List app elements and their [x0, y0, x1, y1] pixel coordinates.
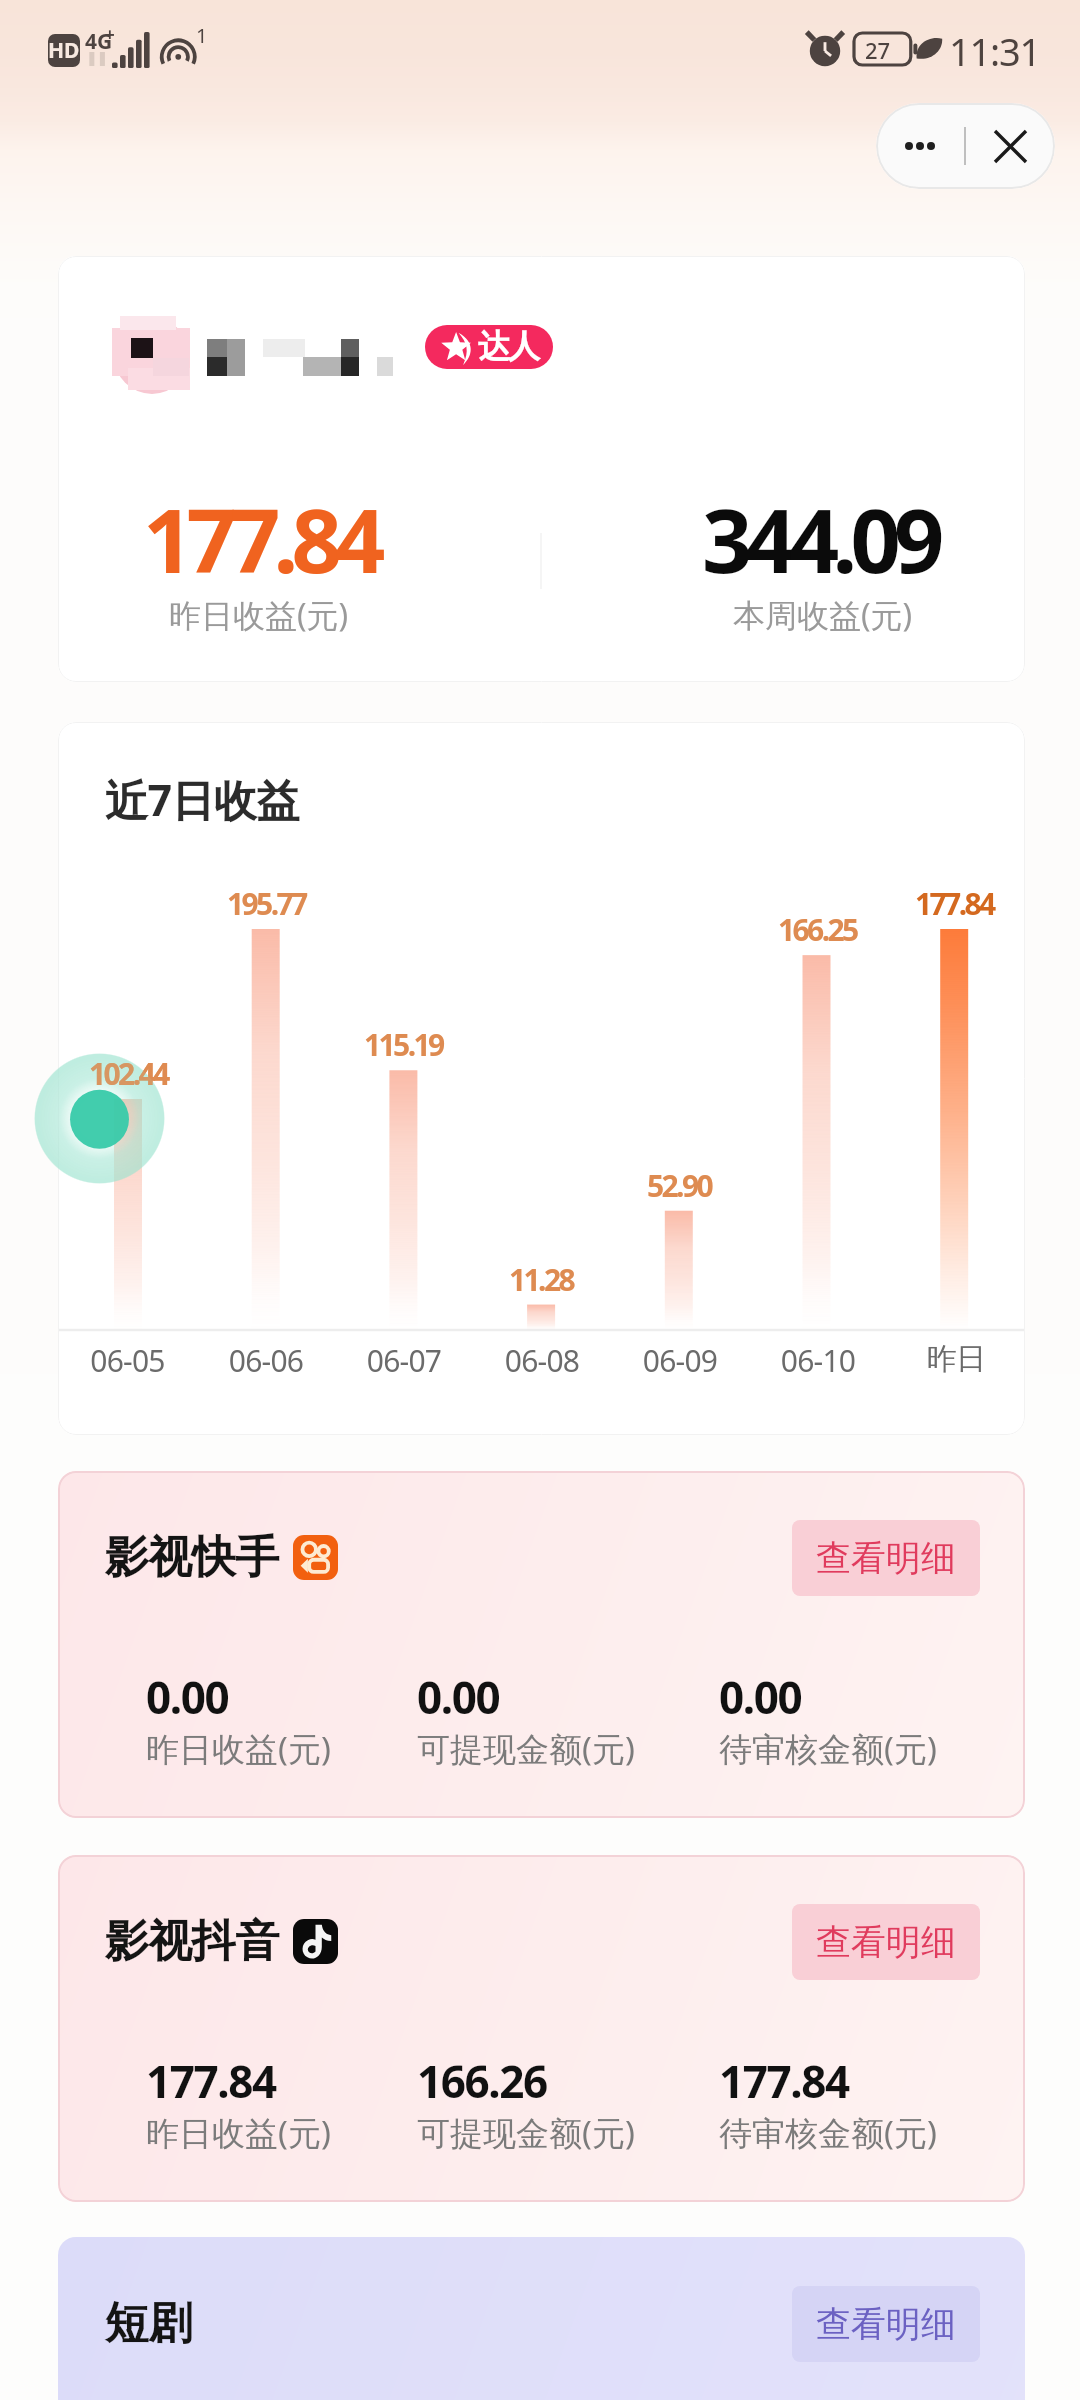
staticText: 06-09	[611, 1340, 749, 1381]
staticText: 昨日	[887, 1340, 1025, 1378]
staticText: 查看明细	[816, 1920, 956, 1964]
staticText: 06-08	[473, 1340, 611, 1381]
staticText: 344.09	[702, 479, 938, 599]
staticText: 177.84	[719, 2051, 849, 2111]
staticText: 06-05	[58, 1340, 197, 1381]
staticText: 待审核金额(元)	[719, 1726, 937, 1771]
button[interactable]: More options	[876, 103, 964, 189]
staticText: 昨日收益(元)	[146, 1726, 331, 1771]
staticText: 166.25	[778, 909, 857, 950]
staticText: 待审核金额(元)	[719, 2110, 937, 2155]
staticText: 06-07	[335, 1340, 473, 1381]
staticText: 11.28	[509, 1259, 574, 1300]
staticText: 查看明细	[816, 1536, 956, 1580]
staticText: 1	[196, 22, 208, 49]
staticText: 查看明细	[816, 2302, 956, 2346]
staticText: +	[105, 23, 115, 46]
staticText: 177.84	[146, 2051, 276, 2111]
staticText: 06-10	[749, 1340, 887, 1381]
staticText: 达人	[479, 326, 539, 366]
button[interactable]: 查看明细	[792, 1520, 980, 1596]
button[interactable]: Close	[966, 103, 1055, 189]
staticText: 本周收益(元)	[733, 593, 913, 637]
staticText: 0.00	[719, 1667, 802, 1727]
staticText: 177.84	[915, 883, 994, 924]
staticText: 可提现金额(元)	[417, 2110, 635, 2155]
button[interactable]: 影视快手	[58, 1471, 1025, 1818]
button[interactable]: 近7日收益	[58, 722, 1025, 1435]
button[interactable]: 达人	[58, 256, 1025, 682]
staticText: 0.00	[417, 1667, 500, 1727]
staticText: 短剧	[105, 2296, 192, 2351]
staticText: 27	[865, 35, 891, 65]
staticText: 115.19	[364, 1024, 443, 1065]
staticText: 影视快手	[105, 1530, 279, 1585]
staticText: 11:31	[949, 25, 1041, 77]
staticText: 102.44	[89, 1053, 168, 1094]
staticText: 近7日收益	[105, 770, 299, 829]
button[interactable]: 查看明细	[792, 1904, 980, 1980]
staticText: 102.44	[89, 1053, 168, 1094]
staticText: 昨日收益(元)	[146, 2110, 331, 2155]
staticText: 4G	[85, 27, 113, 56]
staticText: 166.26	[417, 2051, 547, 2111]
staticText: 可提现金额(元)	[417, 1726, 635, 1771]
staticText: 0.00	[146, 1667, 229, 1727]
staticText: HD	[48, 36, 80, 65]
staticText: 177.84	[143, 479, 379, 599]
button[interactable]: 查看明细	[792, 2286, 980, 2362]
staticText: 昨日收益(元)	[169, 593, 349, 637]
button[interactable]: 短剧	[58, 2237, 1025, 2400]
button[interactable]: 影视抖音	[58, 1855, 1025, 2202]
staticText: 06-06	[197, 1340, 335, 1381]
staticText: 影视抖音	[105, 1914, 279, 1969]
staticText: 52.90	[647, 1165, 712, 1206]
staticText: 195.77	[227, 883, 306, 924]
